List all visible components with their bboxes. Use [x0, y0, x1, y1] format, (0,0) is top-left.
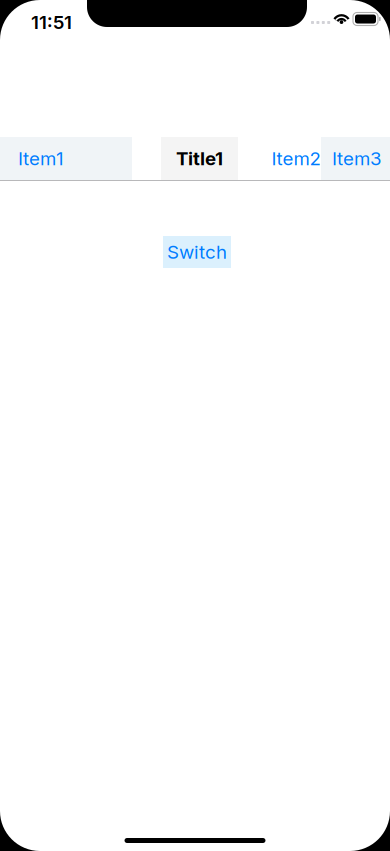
staticText: Switch [167, 241, 227, 263]
button[interactable]: Item2 [271, 137, 321, 180]
staticText: Item1 [18, 147, 64, 170]
staticText: Title1 [176, 147, 223, 170]
staticText: Item2 [271, 147, 320, 170]
button[interactable]: Switch [163, 236, 231, 268]
button[interactable]: Item1 [0, 137, 132, 180]
staticText: 11:51 [31, 11, 72, 34]
staticText: Item3 [332, 147, 382, 170]
button[interactable]: Item3 [321, 137, 390, 180]
